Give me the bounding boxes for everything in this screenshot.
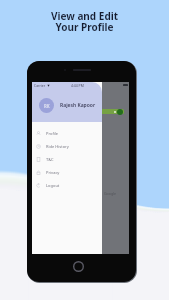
button[interactable]: Profile <box>32 127 102 140</box>
staticText: Logout <box>46 183 60 188</box>
other: Home <box>73 261 84 272</box>
button[interactable]: Privacy <box>32 166 102 179</box>
staticText: 4:44 PM <box>71 83 84 88</box>
staticText: RK <box>44 103 50 109</box>
staticText: Profile <box>46 131 59 136</box>
button[interactable]: Ride History <box>32 140 102 153</box>
staticText: Ride History <box>46 144 69 149</box>
staticText: Rajesh Kapoor <box>60 102 96 109</box>
staticText: T&C <box>46 157 54 162</box>
staticText: View and Edit Your Profile <box>0 9 169 34</box>
button[interactable]: T&C <box>32 153 102 166</box>
staticText: Google <box>104 191 117 196</box>
staticText: Carrier <box>34 83 46 88</box>
button[interactable]: Logout <box>32 179 102 192</box>
staticText: Privacy <box>46 170 60 175</box>
